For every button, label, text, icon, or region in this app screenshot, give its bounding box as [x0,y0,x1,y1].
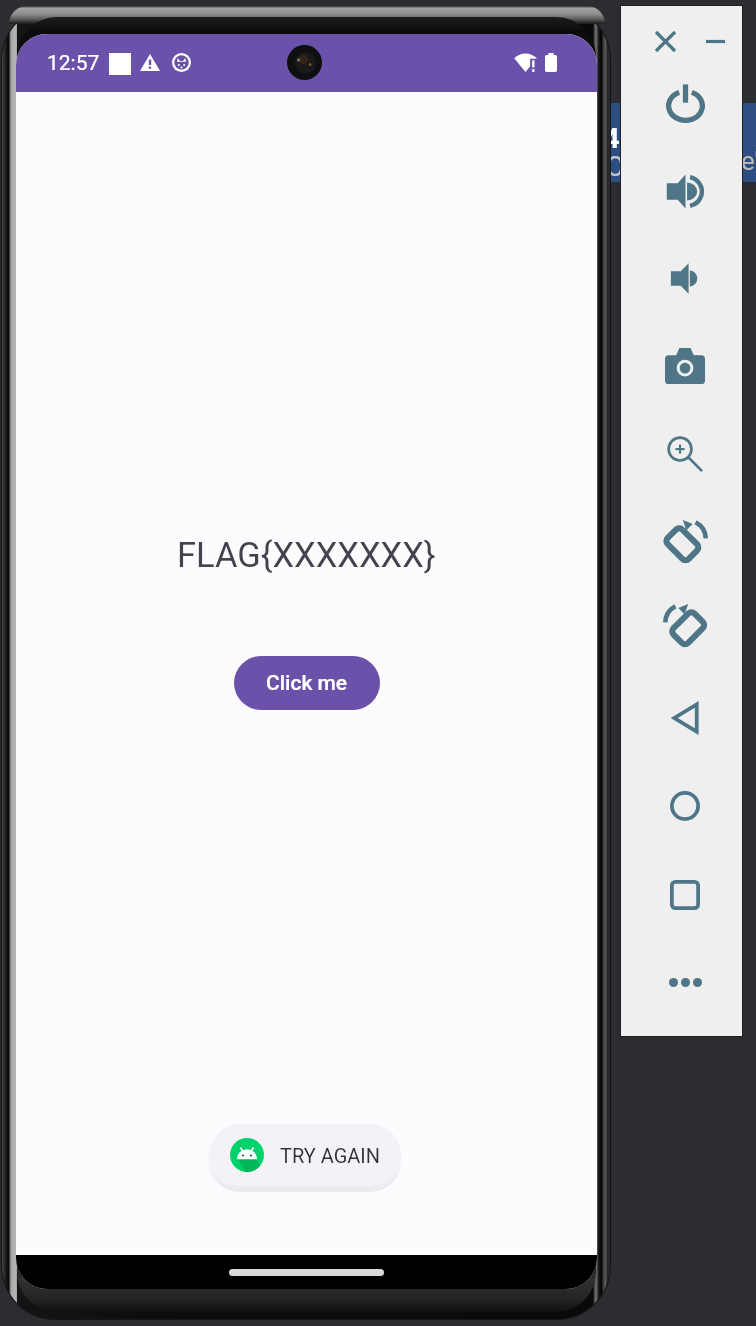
staticText: C [606,151,624,183]
button[interactable]: Screenshot [659,339,711,391]
button[interactable]: Home [659,780,711,832]
button[interactable]: TRY AGAIN [209,1124,401,1186]
button[interactable]: Volume down [659,252,711,304]
staticText: TRY AGAIN [280,1144,381,1167]
button[interactable]: Close [643,19,687,63]
button[interactable]: Rotate right [659,599,711,651]
button[interactable]: Back [659,692,711,744]
button[interactable]: Zoom in [659,428,711,480]
button[interactable]: Click me [234,656,380,710]
button[interactable]: More [659,956,711,1008]
button[interactable]: Volume up [659,165,711,217]
staticText: 12:57 [47,51,100,76]
button[interactable]: Power [659,77,711,129]
staticText: Click me [266,671,348,696]
staticText: e' [741,146,756,176]
button[interactable]: Minimize [693,19,737,63]
button[interactable]: Rotate left [659,515,711,567]
staticText: 4 [604,123,620,155]
button[interactable]: Overview [659,869,711,921]
staticText: FLAG{XXXXXXX} [177,535,436,575]
